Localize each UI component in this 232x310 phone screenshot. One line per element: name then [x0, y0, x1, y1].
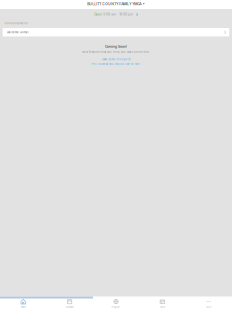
staticText: New features that will help you stay con… — [82, 50, 150, 53]
staticText: Have some thoughts? — [101, 58, 130, 61]
button[interactable]: Home — [0, 296, 46, 310]
button[interactable]: Schedules — [46, 296, 93, 310]
staticText: Cards — [160, 306, 165, 308]
staticText: Announcements — [4, 22, 27, 25]
button[interactable]: Open — [0, 13, 232, 16]
staticText: 5:00 am - 10:00 pm — [103, 13, 133, 16]
staticText: More — [206, 306, 211, 308]
button[interactable]: Welcome Home! — [3, 28, 229, 36]
staticText: Tell us what you would like to see. — [91, 62, 141, 66]
staticText: Home — [21, 306, 26, 308]
staticText: Programs — [111, 306, 120, 308]
button[interactable]: Cards — [139, 296, 186, 310]
staticText: BULLITT COUNTY FAMILY YMCA — [87, 2, 141, 6]
button[interactable]: BULLITT COUNTY FAMILY YMCA — [0, 2, 232, 6]
button[interactable]: Have some thoughts? — [0, 58, 232, 66]
staticText: Coming Soon! — [105, 45, 127, 49]
button[interactable]: More — [186, 296, 232, 310]
staticText: Schedules — [66, 306, 74, 308]
staticText: Welcome Home! — [7, 31, 29, 34]
button[interactable]: Programs — [93, 296, 139, 310]
staticText: Open — [94, 13, 102, 16]
